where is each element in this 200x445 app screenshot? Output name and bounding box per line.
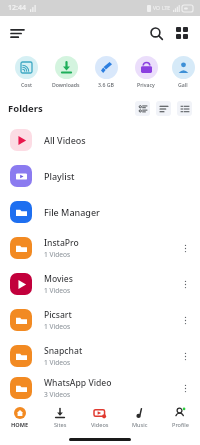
button[interactable]: Menu — [4, 20, 30, 46]
button[interactable]: WhatsApp Video — [0, 374, 200, 402]
button[interactable]: All Videos — [0, 122, 200, 158]
button[interactable]: Playlist — [0, 158, 200, 194]
staticText: VO — [153, 5, 160, 12]
button[interactable]: Downloads — [46, 56, 86, 88]
staticText: Profile — [172, 421, 189, 429]
staticText: Sites — [54, 421, 67, 429]
button[interactable]: Videos — [80, 402, 120, 434]
button[interactable]: Profile — [160, 402, 200, 434]
staticText: Gall — [178, 81, 188, 88]
button[interactable]: Picsart — [0, 302, 200, 338]
button[interactable]: Search — [143, 20, 169, 46]
staticText: WhatsApp Video — [44, 377, 112, 389]
staticText: 3 Videos — [44, 390, 71, 399]
staticText: 3.6 GB — [98, 81, 114, 88]
button[interactable]: Sites — [40, 402, 80, 434]
staticText: 12:44 — [8, 3, 26, 13]
button[interactable]: View mode 2 — [177, 101, 192, 116]
button[interactable]: Privacy — [126, 56, 166, 88]
staticText: Playlist — [44, 170, 75, 182]
staticText: Downloads — [52, 81, 80, 88]
staticText: 1 Videos — [44, 286, 71, 295]
staticText: File Manager — [44, 206, 100, 218]
staticText: 1 Videos — [44, 358, 71, 367]
button[interactable]: More options for WhatsApp Video — [174, 377, 196, 399]
button[interactable]: InstaPro — [0, 230, 200, 266]
button[interactable]: File Manager — [0, 194, 200, 230]
button[interactable]: View mode 1 — [156, 101, 171, 116]
button[interactable]: Music — [120, 402, 160, 434]
button[interactable]: View mode 0 — [135, 101, 150, 116]
staticText: Picsart — [44, 309, 72, 321]
button[interactable]: More options for Movies — [174, 273, 196, 295]
staticText: 1 Videos — [44, 250, 71, 259]
staticText: 1 Videos — [44, 322, 71, 331]
button[interactable]: Snapchat — [0, 338, 200, 374]
staticText: Music — [132, 421, 148, 429]
staticText: Folders — [8, 102, 43, 115]
button[interactable]: More options for Picsart — [174, 309, 196, 331]
staticText: Videos — [91, 421, 109, 429]
button[interactable]: 3.6 GB — [86, 56, 126, 88]
staticText: Privacy — [137, 81, 155, 88]
staticText: All Videos — [44, 134, 86, 146]
staticText: Movies — [44, 273, 73, 285]
staticText: Snapchat — [44, 345, 83, 357]
button[interactable]: HOME — [0, 402, 40, 434]
button[interactable]: Grid view — [169, 20, 195, 46]
staticText: HOME — [11, 421, 29, 429]
button[interactable]: Cost — [6, 56, 46, 88]
button[interactable]: More options for Snapchat — [174, 345, 196, 367]
staticText: Cost — [21, 81, 32, 88]
button[interactable]: Movies — [0, 266, 200, 302]
staticText: InstaPro — [44, 237, 79, 249]
button[interactable]: Gall — [166, 56, 200, 88]
staticText: LTE — [162, 5, 171, 12]
button[interactable]: More options for InstaPro — [174, 237, 196, 259]
